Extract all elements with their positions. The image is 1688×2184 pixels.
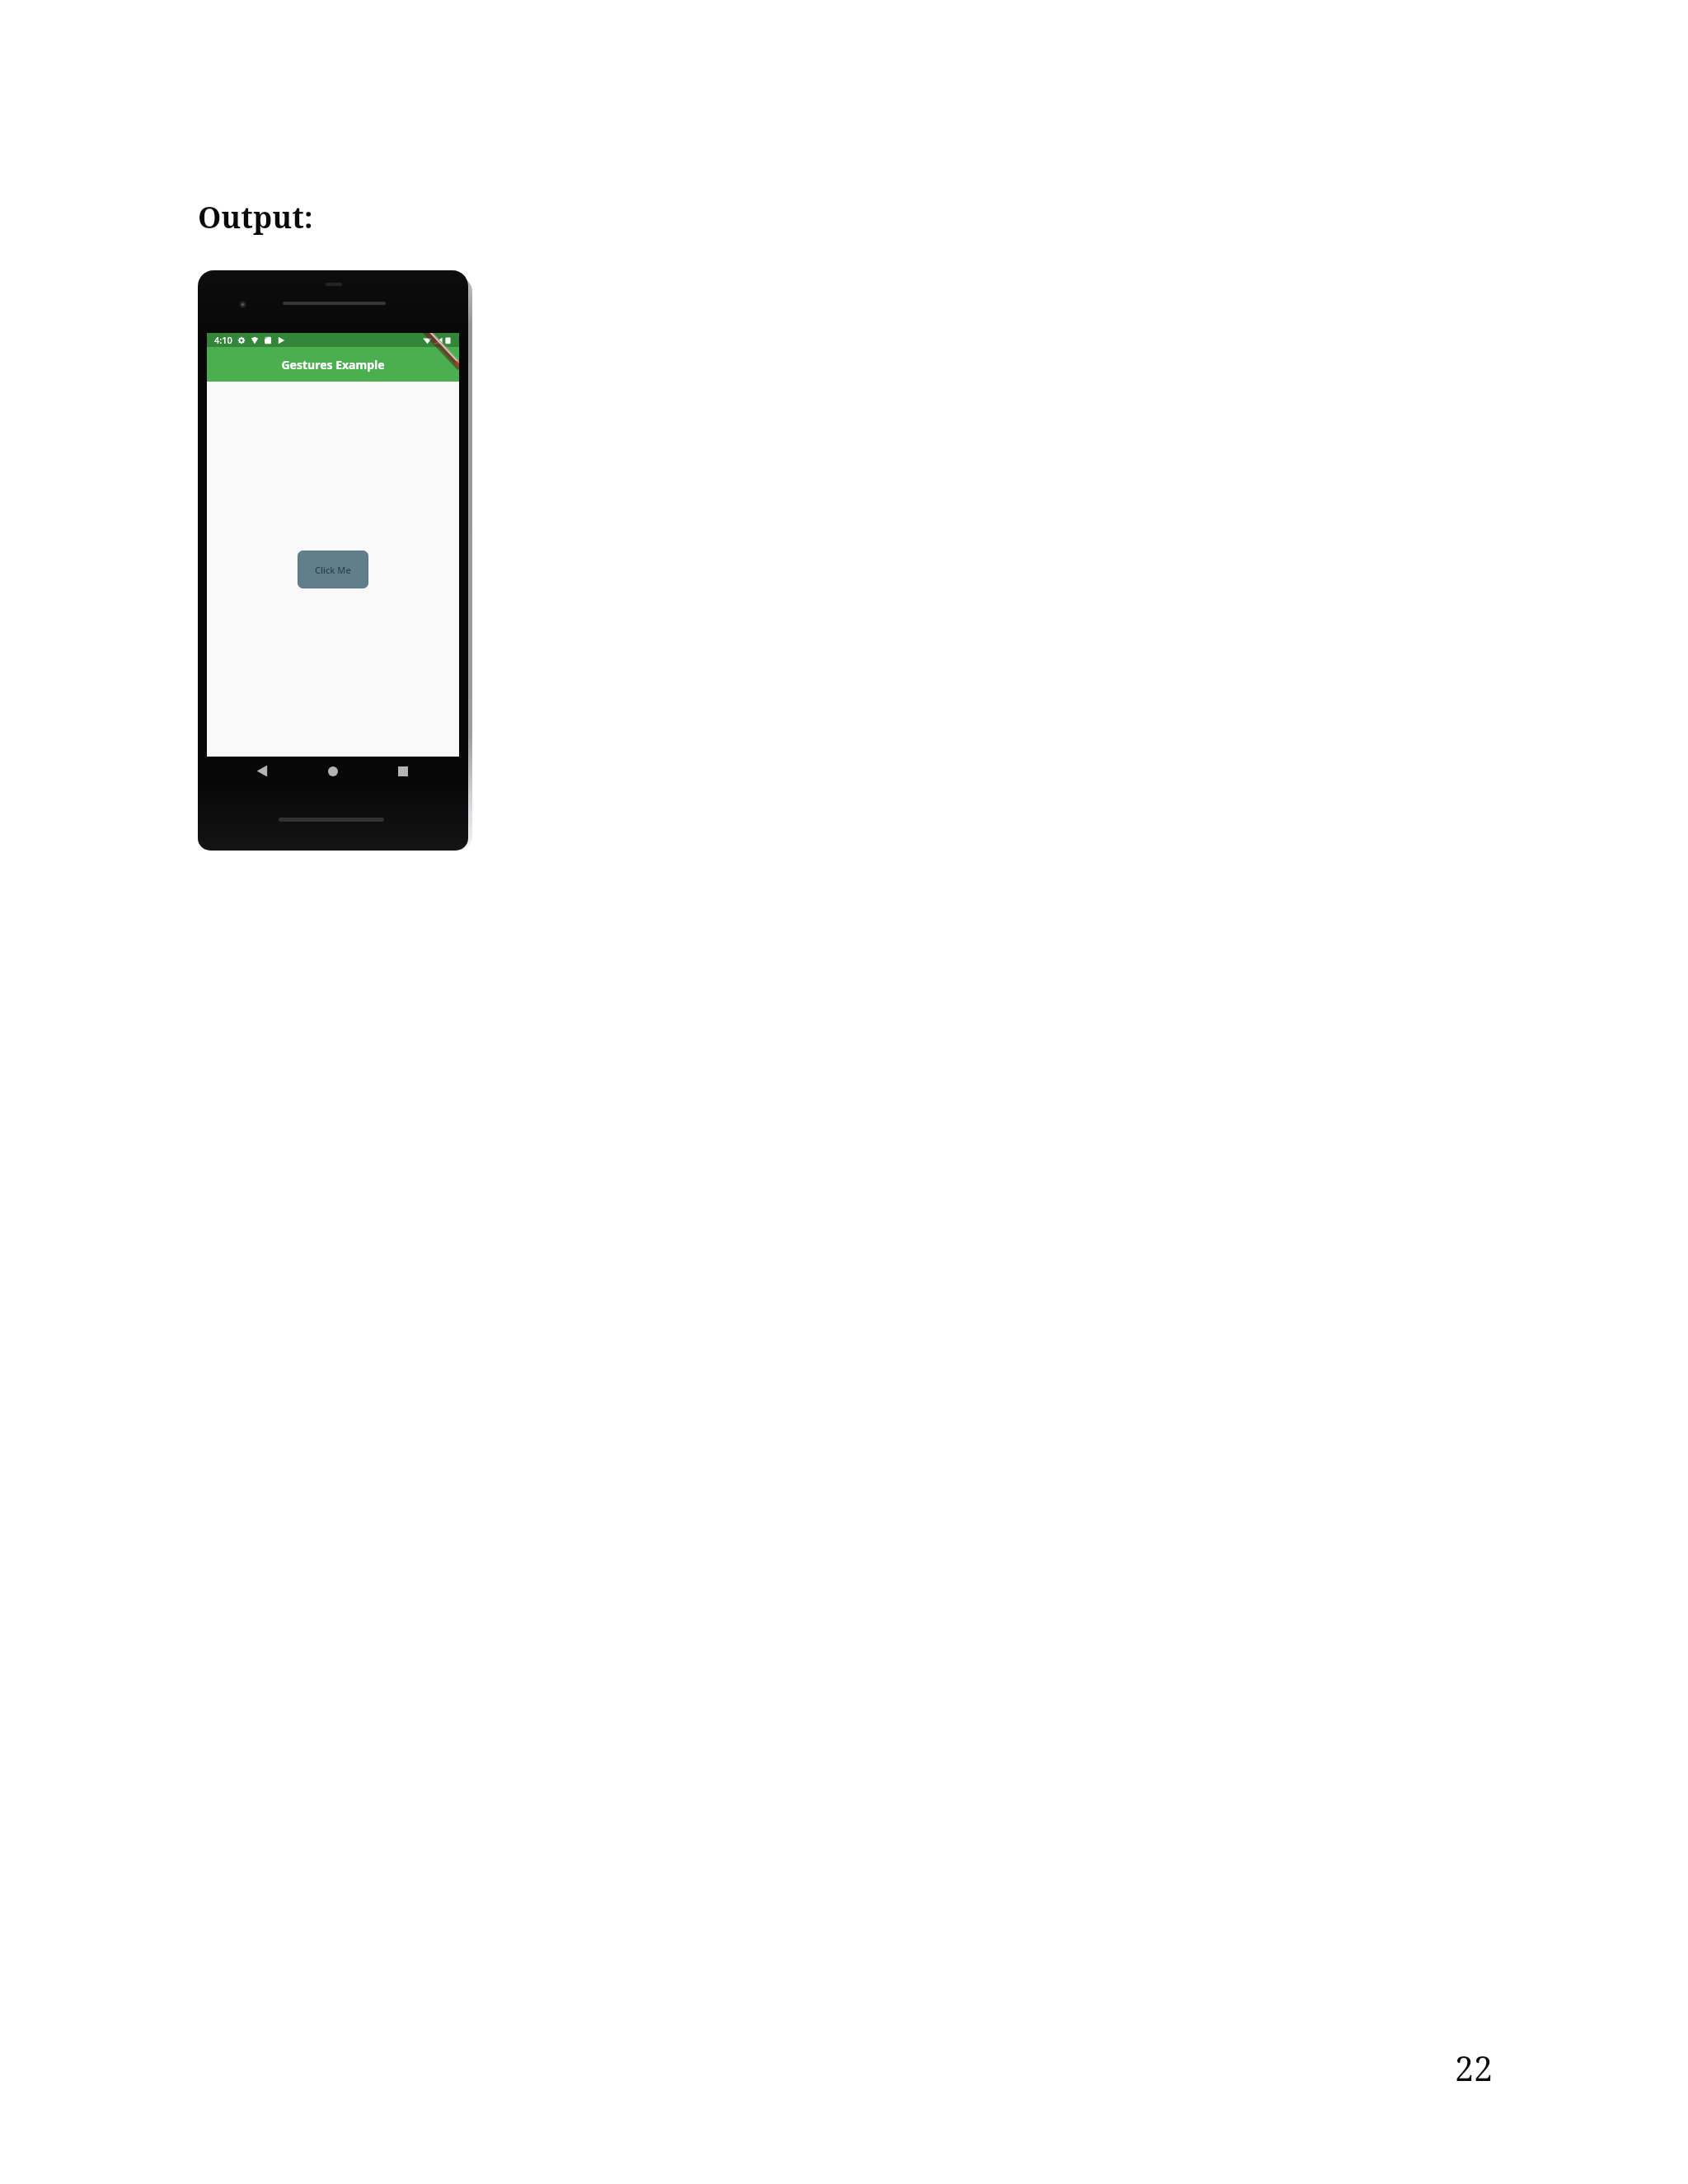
button[interactable]: Gestures Example (207, 347, 459, 382)
staticText: Click Me (315, 564, 351, 576)
button[interactable]: Recents (398, 766, 408, 776)
button[interactable]: Click Me (298, 551, 368, 588)
staticText: Output: (198, 197, 313, 237)
staticText: 4:10 (214, 334, 232, 346)
button[interactable]: Back (256, 765, 268, 777)
button[interactable]: Home (328, 766, 338, 776)
staticText: 22 (1455, 2045, 1493, 2091)
staticText: Gestures Example (281, 357, 385, 373)
